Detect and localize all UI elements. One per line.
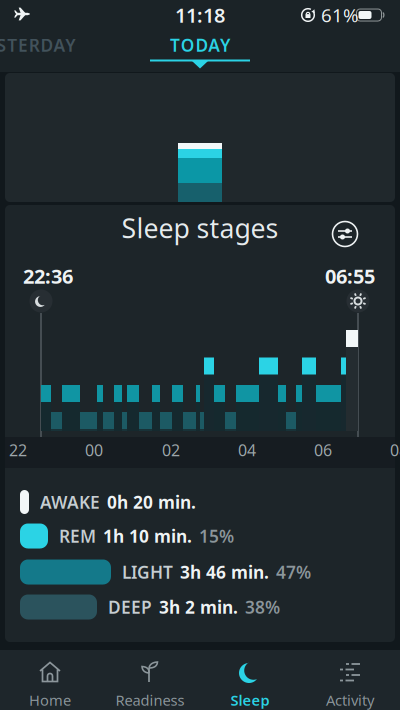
staticText: 15% (199, 524, 234, 547)
staticText: AWAKE (40, 490, 100, 513)
staticText: 22 (9, 439, 27, 461)
staticText: 61% (321, 3, 359, 27)
button[interactable]: Activity (300, 650, 400, 710)
staticText: Sleep stages (121, 210, 278, 246)
staticText: 38% (245, 595, 280, 618)
staticText: 3h 2 min. (159, 595, 238, 618)
staticText: 47% (276, 560, 311, 583)
staticText: 06:55 (325, 263, 375, 289)
staticText: Sleep (230, 690, 269, 710)
staticText: 04 (238, 439, 256, 461)
staticText: 08 (390, 439, 400, 461)
button[interactable]: YESTERDAY (0, 30, 85, 60)
button[interactable]: TODAY (140, 30, 260, 60)
staticText: 02 (162, 439, 180, 461)
staticText: YESTERDAY (0, 33, 75, 56)
staticText: 22:36 (23, 263, 73, 289)
staticText: DEEP (108, 595, 152, 618)
button[interactable]: Home (0, 650, 100, 710)
staticText: LIGHT (122, 560, 173, 583)
staticText: 11:18 (175, 2, 225, 28)
staticText: 00 (85, 439, 103, 461)
button[interactable]: Sleep (200, 650, 300, 710)
staticText: Readiness (115, 690, 184, 710)
staticText: TODAY (170, 33, 230, 56)
staticText: 1h 10 min. (103, 524, 192, 547)
staticText: 3h 46 min. (180, 560, 269, 583)
staticText: Home (29, 690, 71, 710)
button[interactable]: Chart options (325, 214, 365, 254)
staticText: 06 (314, 439, 332, 461)
staticText: Activity (326, 690, 374, 710)
staticText: 0h 20 min. (107, 490, 196, 513)
button[interactable]: Readiness (100, 650, 200, 710)
staticText: REM (59, 524, 96, 547)
